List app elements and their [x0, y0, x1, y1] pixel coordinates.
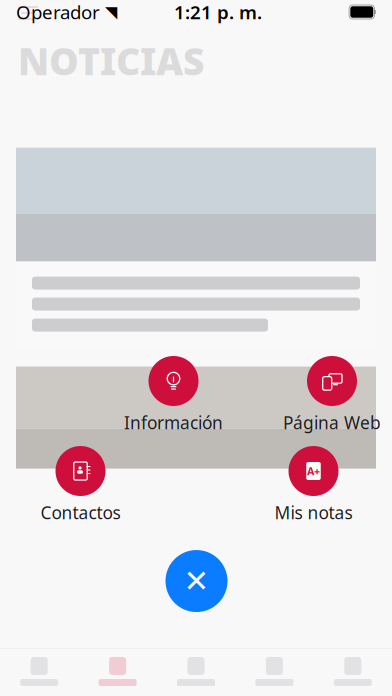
staticText: A+	[307, 464, 320, 478]
staticText: Página Web	[283, 411, 381, 434]
staticText: ✕	[183, 564, 209, 598]
button[interactable]: Página Web	[279, 356, 385, 434]
staticText: NOTICIAS	[18, 36, 205, 86]
button[interactable]: Información	[120, 356, 227, 434]
staticText: Operador	[16, 0, 100, 24]
button[interactable]: Contactos	[36, 446, 124, 524]
staticText: ◥	[105, 3, 117, 21]
staticText: Información	[124, 411, 223, 434]
button[interactable]: A+	[270, 446, 356, 524]
staticText: 1:21 p. m.	[174, 0, 262, 24]
button[interactable]: Cerrar menú	[165, 550, 227, 612]
staticText: Contactos	[40, 501, 120, 524]
staticText: Mis notas	[274, 501, 352, 524]
